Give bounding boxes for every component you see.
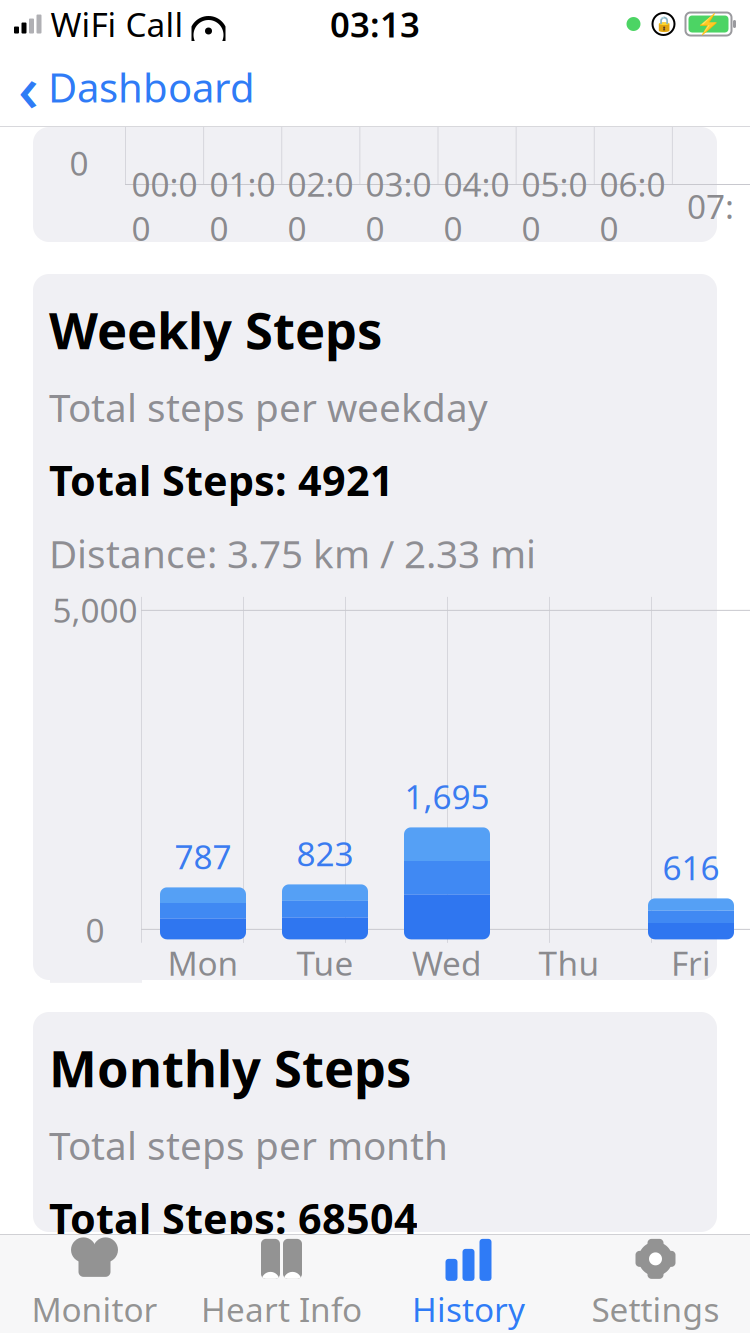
staticText: 04:00: [443, 162, 509, 250]
staticText: Thu: [538, 941, 599, 985]
staticText: 02:00: [287, 162, 353, 250]
staticText: 5,000: [52, 588, 137, 632]
staticText: 07:: [687, 184, 734, 228]
staticText: Total Steps: 4921: [49, 453, 394, 507]
staticText: Weekly Steps: [49, 296, 382, 363]
staticText: ‹: [18, 44, 39, 129]
staticText: 823: [296, 831, 353, 875]
staticText: 00:00: [131, 162, 197, 250]
staticText: Distance: 3.75 km / 2.33 mi: [49, 527, 536, 579]
staticText: Tue: [296, 941, 353, 985]
staticText: Total steps per month: [49, 1119, 448, 1171]
staticText: 787: [174, 834, 231, 878]
staticText: 0: [85, 908, 104, 952]
staticText: Total Steps: 68504: [49, 1191, 418, 1245]
staticText: 🔒: [654, 16, 672, 32]
staticText: Monitor: [31, 1287, 157, 1331]
staticText: History: [412, 1287, 525, 1331]
staticText: 0: [69, 141, 88, 185]
staticText: Heart Info: [201, 1287, 362, 1331]
staticText: Dashboard: [48, 60, 255, 113]
staticText: 01:00: [209, 162, 275, 250]
staticText: 03:00: [365, 162, 431, 250]
button[interactable]: Heart Info: [188, 1235, 375, 1333]
staticText: Wed: [412, 941, 482, 985]
staticText: Mon: [167, 941, 238, 985]
staticText: WiFi Call: [50, 2, 183, 46]
staticText: Monthly Steps: [49, 1034, 411, 1101]
staticText: 03:13: [330, 1, 420, 47]
staticText: Settings: [591, 1287, 719, 1331]
staticText: 06:00: [599, 162, 665, 250]
staticText: 616: [662, 845, 719, 889]
staticText: 05:00: [521, 162, 587, 250]
staticText: Total steps per weekday: [49, 381, 488, 433]
button[interactable]: ‹: [0, 38, 269, 135]
staticText: 1,695: [404, 774, 489, 818]
staticText: Fri: [671, 941, 711, 985]
button[interactable]: Settings: [562, 1235, 749, 1333]
button[interactable]: History: [375, 1235, 562, 1333]
button[interactable]: Monitor: [1, 1235, 188, 1333]
staticText: ⚡: [696, 13, 721, 35]
